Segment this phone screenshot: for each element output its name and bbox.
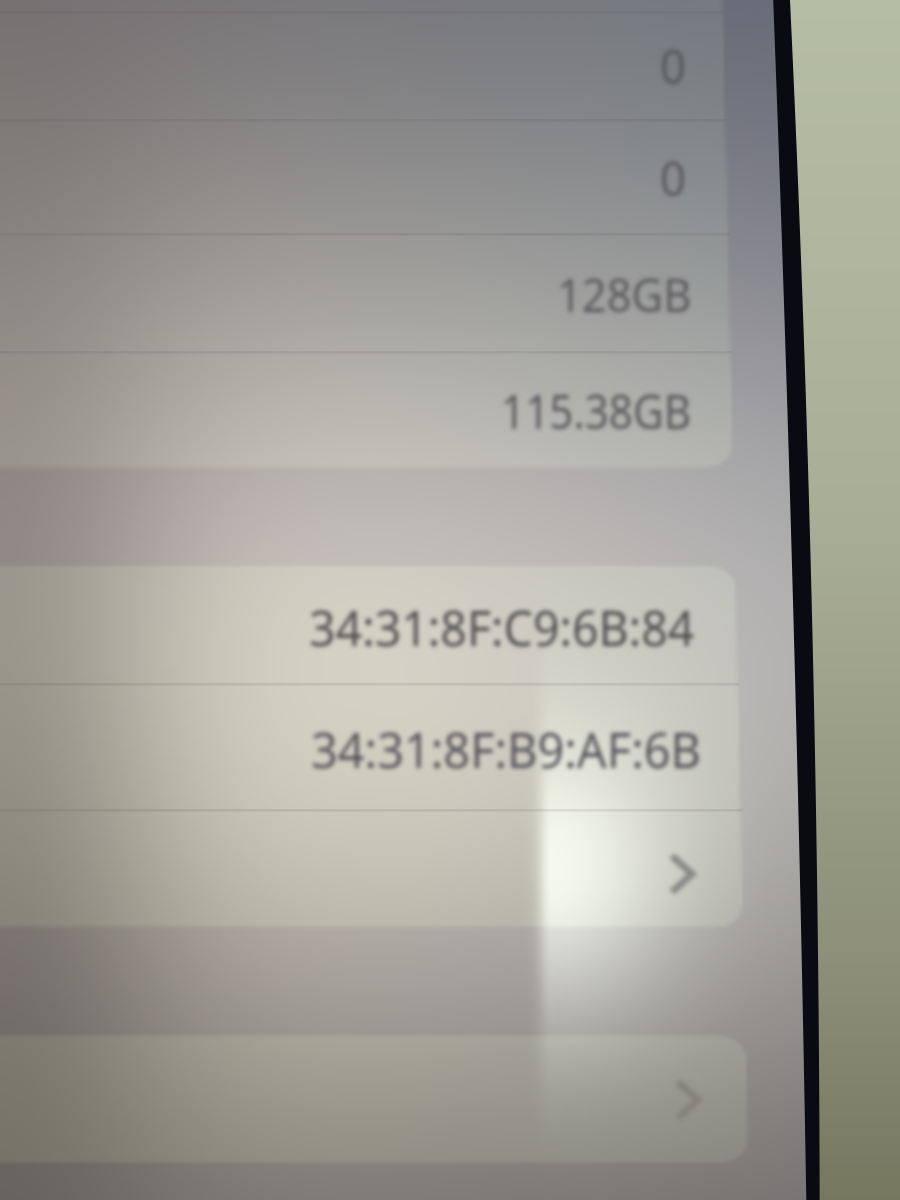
button[interactable]: Certificate Trust Settings: [0, 809, 900, 928]
button[interactable]: Available: [0, 119, 900, 233]
button[interactable]: Capacity: [0, 233, 900, 351]
button[interactable]: Wi-Fi Address: [0, 566, 900, 683]
button[interactable]: Used: [0, 351, 900, 467]
button[interactable]: Bluetooth: [0, 683, 900, 809]
button[interactable]: Legal: [0, 1037, 900, 1164]
